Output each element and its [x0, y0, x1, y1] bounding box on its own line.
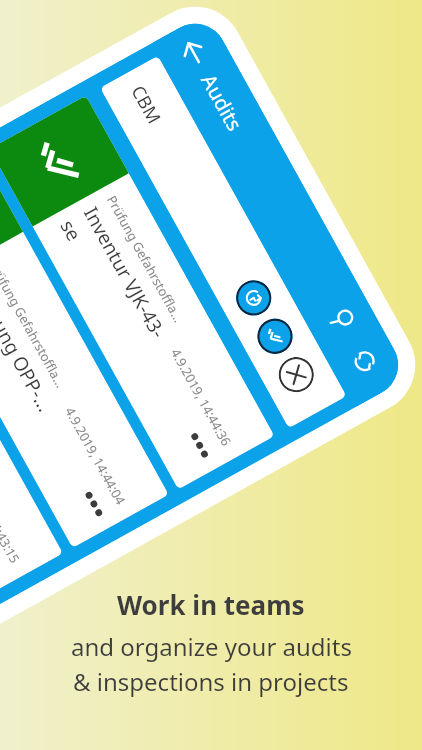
button[interactable]: Refresh: [336, 331, 394, 390]
staticText: 4.9.2019, 14:44:36: [168, 345, 236, 449]
staticText: Work in teams: [117, 587, 305, 622]
staticText: 4.9.2019, 14:44:04: [62, 404, 130, 508]
button[interactable]: Action: [230, 274, 278, 322]
staticText: Prüfung Gefahrstoffla...: [104, 192, 188, 325]
button[interactable]: Prüfung Gefahrstoffla...: [0, 213, 63, 607]
staticText: Audits: [195, 69, 249, 136]
button[interactable]: Action: [272, 351, 320, 399]
staticText: Prüfung Gefahrstoffla...: [0, 258, 70, 390]
staticText: Erfassung OPP-...: [0, 267, 59, 417]
button[interactable]: Prüfung Gefahrstoffla...: [0, 154, 169, 548]
button[interactable]: Search: [313, 290, 371, 348]
staticText: CBM: [126, 81, 167, 128]
button[interactable]: Prüfung Gefahrstoffla...: [0, 95, 275, 490]
staticText: Inventur VJK-43-se: [54, 202, 181, 372]
staticText: & inspections in projects: [73, 665, 349, 698]
button[interactable]: Action: [251, 312, 299, 360]
button[interactable]: CBM: [100, 56, 347, 428]
staticText: and organize your audits: [71, 630, 352, 663]
button[interactable]: Back: [165, 23, 223, 81]
staticText: 4.9.2019, 14:43:15: [0, 462, 24, 566]
